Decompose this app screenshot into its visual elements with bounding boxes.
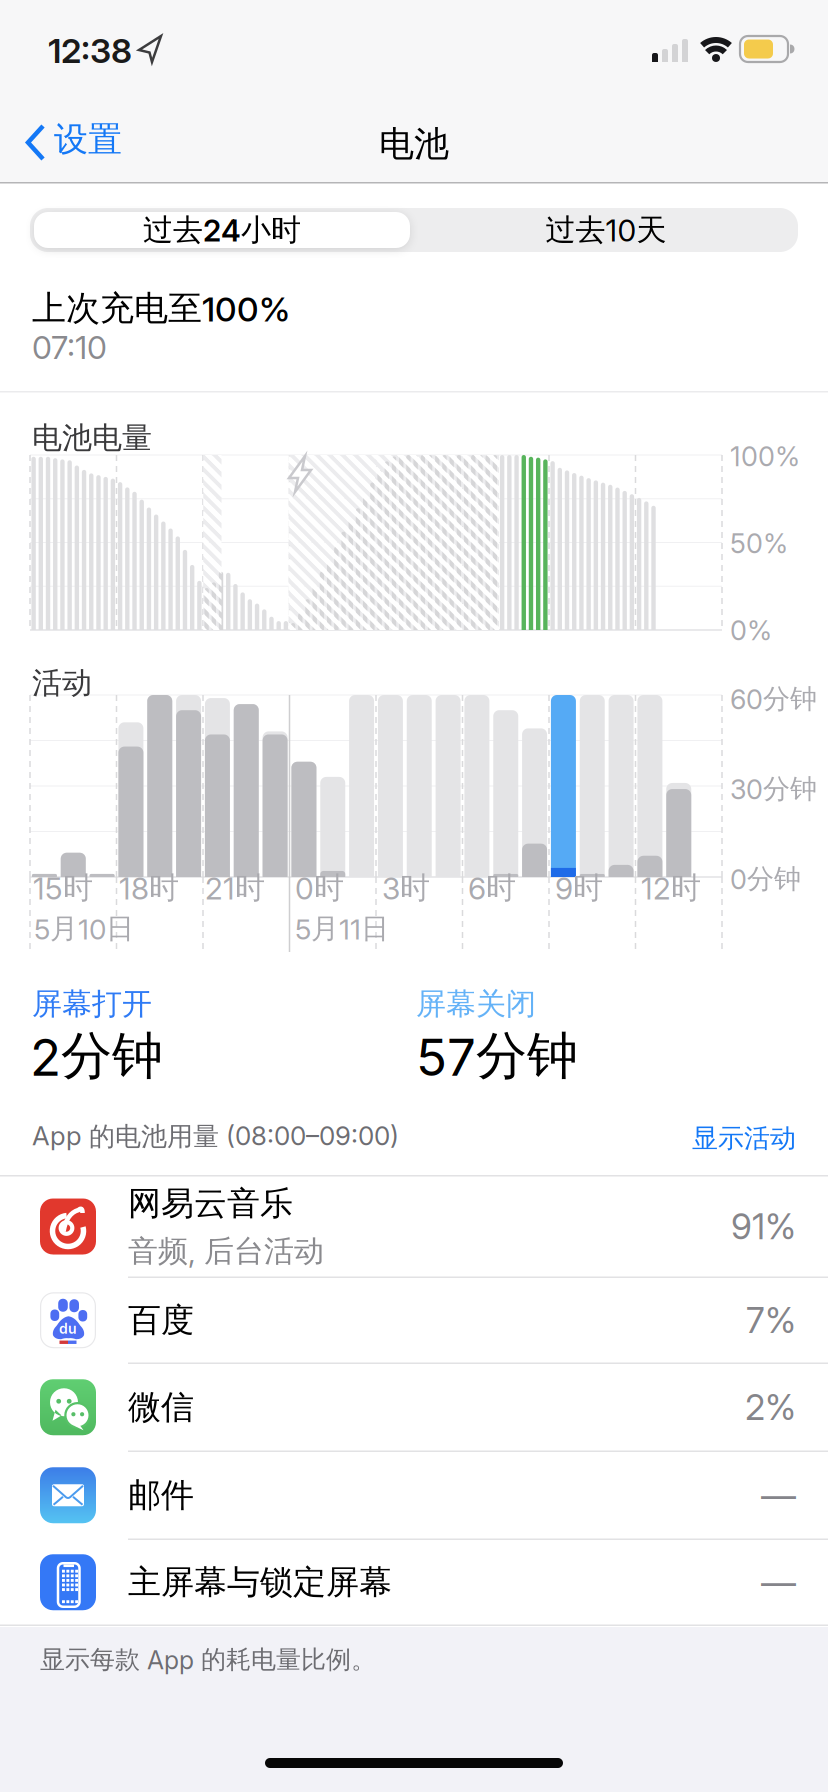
staticText: 显示活动 — [692, 1122, 796, 1155]
button[interactable]: 邮件 — [0, 1452, 828, 1538]
button[interactable]: 显示活动 — [496, 1122, 796, 1155]
staticText: 57分钟 — [416, 1024, 578, 1088]
staticText: 音频, 后台活动 — [128, 1232, 324, 1270]
staticText: 18时 — [119, 869, 179, 907]
staticText: 50% — [730, 527, 788, 560]
staticText: 0% — [730, 614, 772, 647]
staticText: 设置 — [54, 118, 122, 161]
staticText: 12:38 — [48, 30, 132, 71]
staticText: — — [761, 1474, 796, 1516]
staticText: 07:10 — [32, 328, 107, 367]
staticText: 30分钟 — [730, 772, 817, 806]
staticText: — — [761, 1561, 796, 1603]
staticText: 91% — [731, 1205, 796, 1248]
button[interactable]: 微信 — [0, 1364, 828, 1450]
staticText: 3时 — [382, 869, 430, 907]
staticText: 5月11日 — [295, 911, 389, 946]
staticText: 屏幕打开 — [32, 985, 152, 1023]
staticText: 过去10天 — [545, 211, 666, 249]
staticText: 电池 — [379, 122, 449, 166]
staticText: 2分钟 — [30, 1024, 163, 1088]
staticText: du — [59, 1320, 77, 1337]
staticText: 6时 — [468, 869, 516, 907]
staticText: 21时 — [205, 869, 265, 907]
staticText: 活动 — [32, 664, 92, 702]
staticText: App 的电池用量 (08:00–09:00) — [32, 1120, 399, 1153]
staticText: 上次充电至100% — [32, 287, 290, 330]
staticText: 5月10日 — [34, 911, 134, 946]
button[interactable]: 主屏幕与锁定屏幕 — [0, 1540, 828, 1624]
staticText: 邮件 — [128, 1474, 194, 1516]
button[interactable]: 过去24小时 — [30, 208, 414, 252]
staticText: 电池电量 — [32, 419, 152, 457]
staticText: 屏幕关闭 — [416, 985, 536, 1023]
button[interactable]: 设置 — [22, 115, 182, 171]
staticText: 2% — [745, 1386, 796, 1428]
staticText: 0时 — [295, 869, 344, 907]
staticText: 12时 — [641, 869, 701, 907]
staticText: 60分钟 — [730, 682, 817, 716]
button[interactable]: 网易云音乐 — [0, 1176, 828, 1276]
staticText: 微信 — [128, 1386, 194, 1428]
staticText: 网易云音乐 — [128, 1183, 293, 1224]
staticText: 显示每款 App 的耗电量比例。 — [40, 1644, 376, 1675]
button[interactable]: 过去10天 — [414, 208, 798, 252]
staticText: 100% — [730, 440, 800, 473]
staticText: 0分钟 — [730, 862, 801, 896]
staticText: 主屏幕与锁定屏幕 — [128, 1561, 392, 1603]
staticText: 7% — [746, 1299, 796, 1341]
staticText: 9时 — [555, 869, 603, 907]
button[interactable]: du — [0, 1278, 828, 1362]
staticText: 过去24小时 — [143, 211, 301, 249]
staticText: 百度 — [128, 1299, 194, 1341]
staticText: 15时 — [33, 869, 93, 907]
